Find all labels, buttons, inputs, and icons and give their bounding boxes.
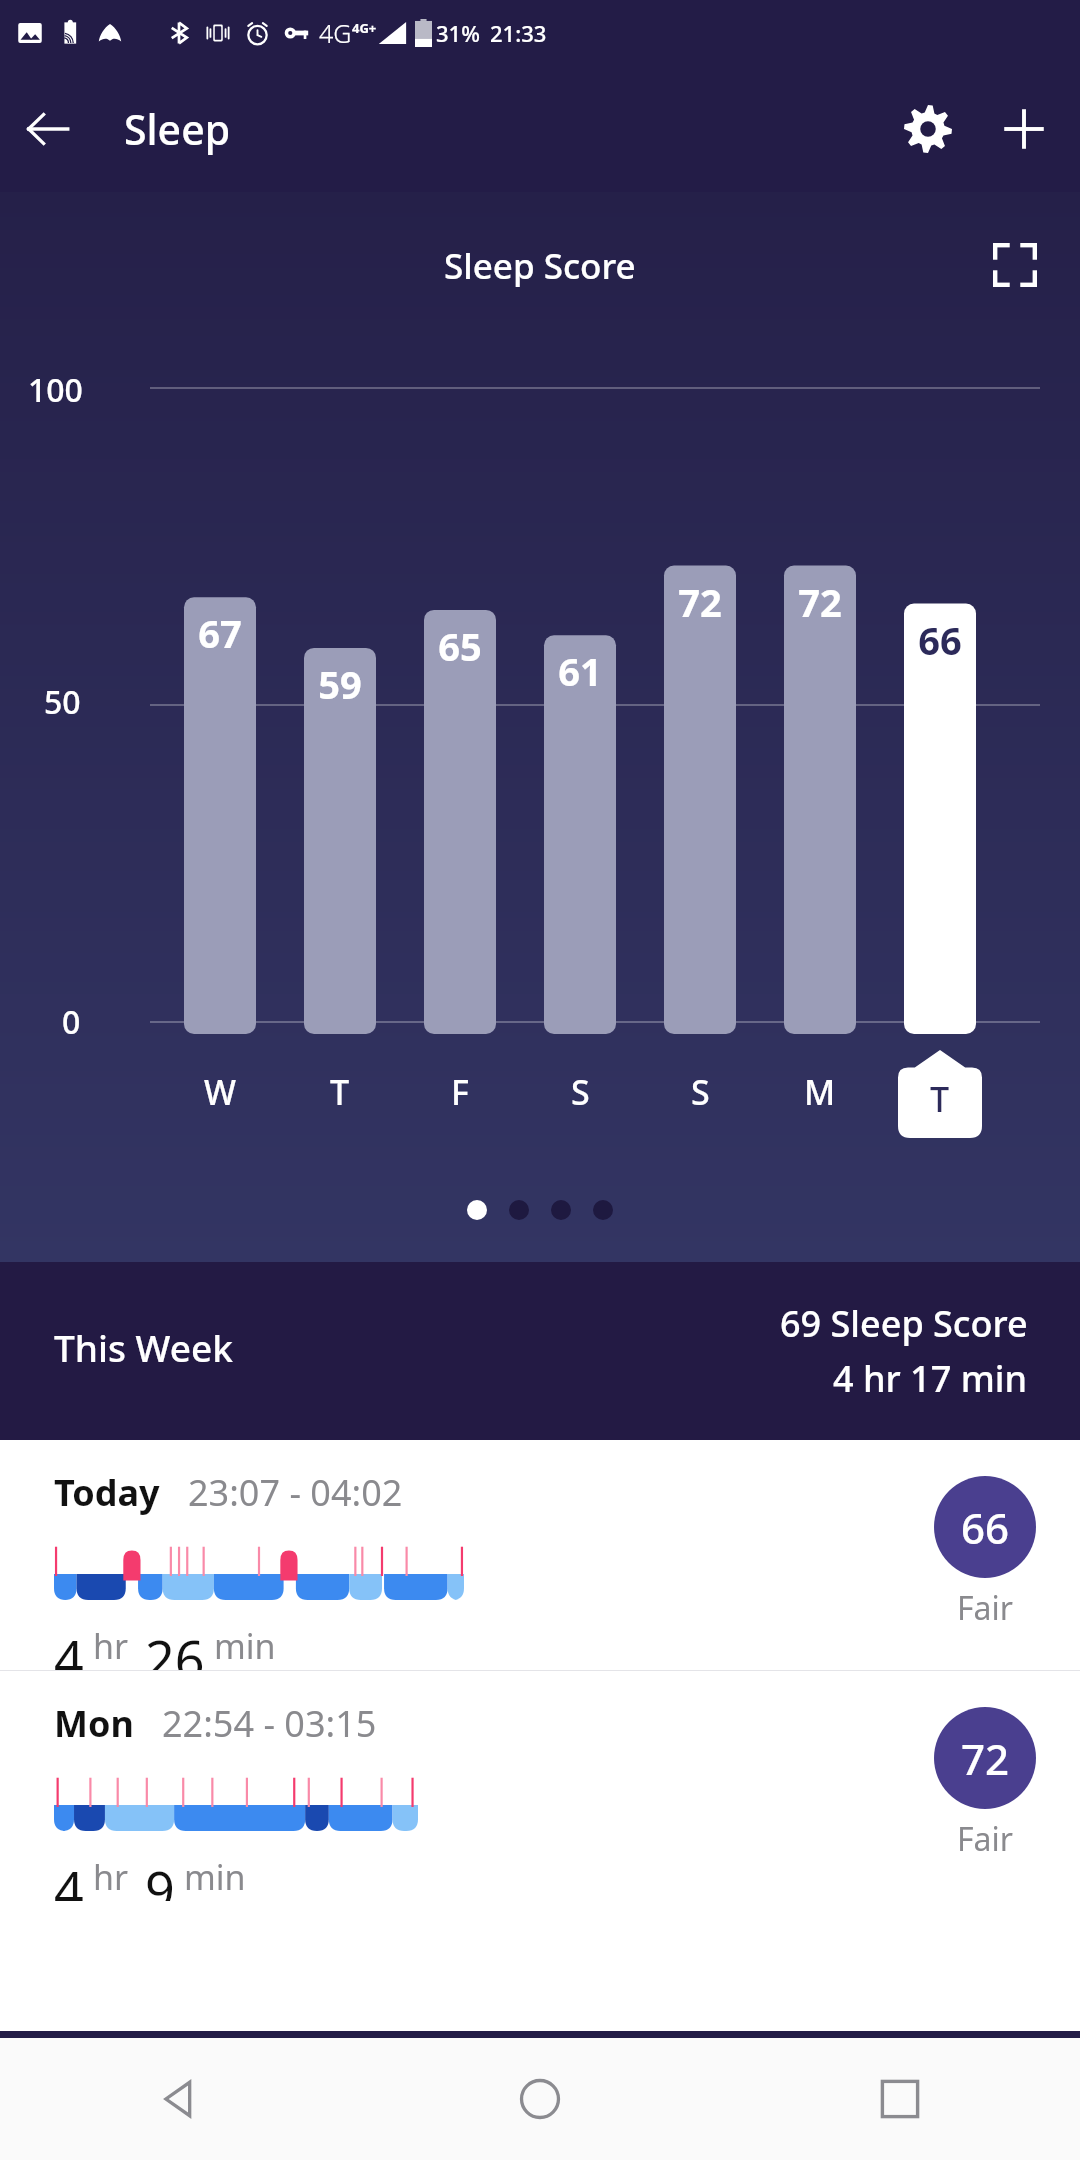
staticText: T [330,1069,350,1115]
staticText: 4 [54,1854,84,1901]
staticText: 9 [145,1854,175,1901]
staticText: Sleep Score [444,242,636,290]
staticText: M [804,1069,836,1115]
staticText: Today [54,1468,160,1517]
staticText: F [451,1069,469,1115]
staticText: S [571,1069,590,1115]
button[interactable]: This Week [0,1262,1080,1440]
staticText: 22:54 - 03:15 [162,1699,377,1748]
button[interactable]: F [418,1062,502,1122]
staticText: hr [93,1854,129,1895]
button[interactable]: Expand chart [980,230,1050,300]
staticText: 59 [318,658,362,710]
staticText: min [184,1854,246,1895]
staticText: hr [93,1623,129,1664]
staticText: 61 [558,645,602,697]
button[interactable]: 72 [934,1707,1036,1809]
staticText: 23:07 - 04:02 [188,1468,403,1517]
staticText: 66 [918,614,962,666]
staticText: 72 [798,576,842,628]
staticText: This Week [54,1322,233,1372]
staticText: 66 [961,1499,1010,1556]
button[interactable]: T [298,1062,382,1122]
staticText: 4G+ [352,19,377,37]
staticText: Fair [957,1817,1014,1861]
button[interactable]: 72 [654,576,746,628]
staticText: min [214,1623,276,1664]
button[interactable]: W [178,1062,262,1122]
staticText: 72 [678,576,722,628]
staticText: W [204,1069,236,1115]
button[interactable]: Home [360,2038,720,2160]
staticText: 4 hr 17 min [833,1354,1028,1403]
button[interactable]: Back [0,81,96,177]
button[interactable]: 66 [894,614,986,666]
staticText: 0 [62,1000,81,1044]
staticText: 65 [438,620,482,672]
button[interactable]: Back [0,2038,360,2160]
staticText: 67 [198,607,242,659]
button[interactable]: Mon [0,1671,1080,1901]
button[interactable]: 67 [174,607,266,659]
staticText: 26 [145,1623,205,1670]
button[interactable]: S [658,1062,742,1122]
staticText: 100 [28,368,83,412]
staticText: 69 Sleep Score [780,1299,1028,1348]
staticText: 72 [961,1730,1010,1787]
button[interactable]: 66 [934,1476,1036,1578]
staticText: 31% [436,18,480,48]
staticText: Sleep [124,101,231,157]
button[interactable]: Add sleep log [976,81,1072,177]
staticText: 4 [54,1623,84,1670]
staticText: 4G [319,16,352,50]
staticText: Mon [54,1699,134,1748]
button[interactable]: Recent apps [720,2038,1080,2160]
staticText: 50 [44,680,81,724]
button[interactable]: 61 [534,645,626,697]
button[interactable]: 65 [414,620,506,672]
staticText: S [691,1069,710,1115]
button[interactable]: 59 [294,658,386,710]
button[interactable]: 72 [774,576,866,628]
button[interactable]: T [898,1050,982,1138]
staticText: 21:33 [490,18,547,48]
staticText: T [930,1076,950,1122]
button[interactable]: Settings [880,81,976,177]
button[interactable]: Today [0,1440,1080,1670]
button[interactable]: M [778,1062,862,1122]
staticText: Fair [957,1586,1014,1630]
button[interactable]: S [538,1062,622,1122]
